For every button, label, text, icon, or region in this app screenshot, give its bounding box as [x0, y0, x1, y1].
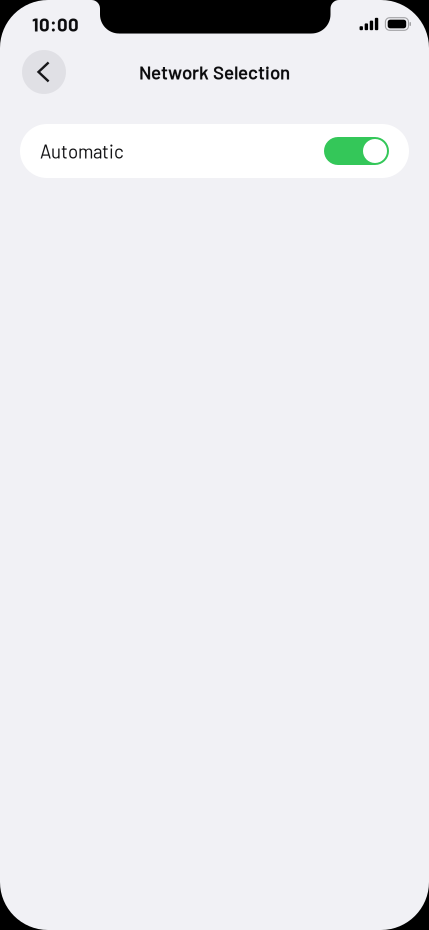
button[interactable]: Back: [22, 50, 66, 94]
staticText: Network Selection: [139, 61, 290, 83]
staticText: Automatic: [40, 140, 124, 162]
staticText: 10:00: [32, 13, 79, 35]
button[interactable]: Automatic: [20, 124, 409, 178]
